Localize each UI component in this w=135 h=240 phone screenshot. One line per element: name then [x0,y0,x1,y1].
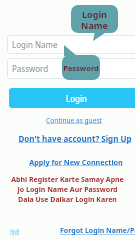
button[interactable]: Apply for New Connection [29,157,123,167]
button[interactable]: हिंदी [10,229,20,237]
button[interactable]: Forgot Login Name/Password? [60,226,135,236]
staticText: Login Name [81,8,108,31]
staticText: Dala Use Dalkar Login Karen [18,195,117,205]
staticText: Login Name [12,39,58,50]
staticText: Login [66,93,87,104]
button[interactable]: Password [7,58,135,79]
staticText: Password [12,63,49,74]
button[interactable]: Login [9,88,135,108]
button[interactable]: Password [62,55,100,80]
button[interactable]: Login Name [7,35,135,54]
button[interactable]: Login Name [71,5,118,33]
button[interactable]: Don't have account? Sign Up [18,133,132,144]
staticText: Password [63,63,99,73]
staticText: Abhi Register Karte Samay Apne [11,175,124,185]
button[interactable]: Continue as guest [46,116,102,125]
staticText: Jo Login Name Aur Password [17,185,118,195]
